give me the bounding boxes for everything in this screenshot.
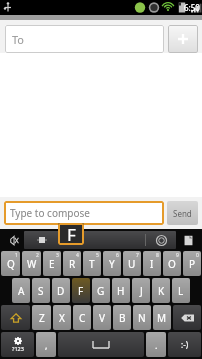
staticText: H [117, 284, 125, 298]
button[interactable]: B [113, 305, 131, 330]
button[interactable]: Voice input [2, 229, 24, 251]
staticText: O [168, 257, 176, 271]
button[interactable]: , [36, 332, 56, 357]
button[interactable]: sh [24, 231, 176, 249]
staticText: M [157, 311, 167, 325]
button[interactable]: Add contact [168, 25, 198, 53]
button[interactable]: L [172, 278, 190, 303]
staticText: To [12, 32, 25, 47]
button[interactable]: H [112, 278, 130, 303]
staticText: A [18, 284, 25, 298]
button[interactable]: F [72, 278, 90, 303]
staticText: C [79, 311, 86, 325]
staticText: 4 [76, 252, 79, 259]
staticText: V [99, 311, 105, 325]
staticText: 6 [116, 252, 119, 259]
button[interactable]: U [123, 251, 141, 276]
staticText: K [158, 284, 165, 298]
button[interactable]: Y [103, 251, 121, 276]
button[interactable]: Q [1, 251, 20, 276]
button[interactable]: P [183, 251, 201, 276]
button[interactable]: Z [32, 305, 51, 330]
staticText: 5 [96, 252, 99, 259]
staticText: F [67, 223, 76, 245]
button[interactable]: O [163, 251, 181, 276]
staticText: Send [173, 208, 192, 219]
staticText: 2 [36, 252, 39, 259]
staticText: G [97, 284, 105, 298]
button[interactable] [1, 305, 30, 330]
button[interactable]: :-) [168, 332, 201, 357]
staticText: P [189, 257, 196, 271]
staticText: sh [64, 234, 74, 246]
staticText: ?123 [12, 345, 24, 352]
staticText: 7 [136, 252, 139, 259]
staticText: X [59, 311, 65, 325]
staticText: R [69, 257, 76, 271]
staticText: T [89, 257, 95, 271]
button[interactable]: V [93, 305, 111, 330]
staticText: 0 [196, 252, 199, 259]
button[interactable] [58, 332, 144, 357]
button[interactable]: ?123 [1, 332, 34, 357]
staticText: 8 [156, 252, 159, 259]
button[interactable]: N [133, 305, 151, 330]
staticText: J [140, 284, 143, 298]
staticText: 3 [56, 252, 59, 259]
button[interactable]: W [22, 251, 41, 276]
button[interactable]: C [73, 305, 91, 330]
staticText: . [155, 339, 158, 351]
button[interactable]: M [153, 305, 171, 330]
staticText: W [27, 257, 37, 271]
staticText: 6:50 [184, 2, 200, 13]
button[interactable]: J [132, 278, 150, 303]
button[interactable]: K [152, 278, 170, 303]
staticText: Type to compose [10, 206, 90, 220]
button[interactable]: . [146, 332, 166, 357]
staticText: U [128, 257, 136, 271]
staticText: S [38, 284, 44, 298]
button[interactable]: Send [167, 201, 198, 225]
staticText: F [78, 284, 84, 298]
staticText: B [119, 311, 126, 325]
button[interactable]: A [12, 278, 30, 303]
staticText: D [57, 284, 65, 298]
staticText: :-) [181, 339, 189, 350]
button[interactable]: X [53, 305, 71, 330]
button[interactable]: S [32, 278, 50, 303]
staticText: Q [7, 257, 15, 271]
button[interactable] [173, 305, 201, 330]
button[interactable]: E [43, 251, 61, 276]
staticText: 9 [176, 252, 179, 259]
staticText: L [178, 284, 184, 298]
button[interactable]: To [5, 25, 164, 53]
staticText: Y [109, 257, 115, 271]
staticText: , [45, 339, 48, 351]
button[interactable]: D [52, 278, 70, 303]
button[interactable]: Type to compose [4, 201, 164, 225]
staticText: E [49, 257, 55, 271]
button[interactable]: R [63, 251, 81, 276]
staticText: Z [39, 311, 45, 325]
staticText: I [150, 257, 154, 271]
button[interactable]: T [83, 251, 101, 276]
button[interactable]: G [92, 278, 110, 303]
staticText: 1 [15, 252, 18, 259]
button[interactable]: I [143, 251, 161, 276]
staticText: N [138, 311, 146, 325]
button[interactable]: Clipboard [176, 229, 200, 251]
